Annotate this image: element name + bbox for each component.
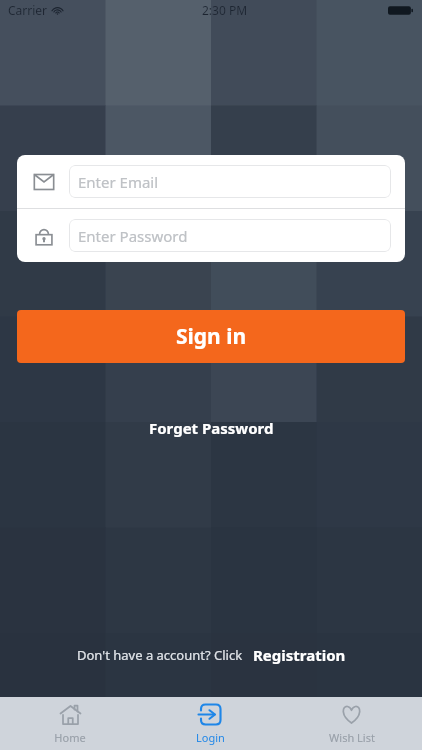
staticText: Home [54, 730, 86, 745]
button[interactable]: Enter Password [69, 219, 391, 252]
button[interactable]: Home [0, 697, 140, 750]
other: Wish List [339, 702, 364, 727]
staticText: Enter Password [78, 226, 188, 246]
staticText: 2:30 PM [202, 2, 248, 18]
button[interactable]: Wish List [281, 697, 422, 750]
button[interactable]: Forget Password [139, 414, 284, 442]
button[interactable]: Registration [253, 645, 346, 665]
staticText: Wish List [329, 730, 375, 745]
staticText: Login [196, 730, 225, 745]
other: Login [198, 702, 223, 727]
button[interactable]: Sign in [17, 310, 405, 363]
staticText: Registration [253, 645, 346, 665]
button[interactable]: Login [140, 697, 281, 750]
button[interactable]: Enter Email [69, 165, 391, 198]
staticText: Sign in [176, 322, 247, 351]
staticText: Carrier [8, 2, 48, 18]
staticText: Forget Password [149, 418, 274, 438]
staticText: Don't have a account? Click [77, 646, 243, 664]
other: Password [33, 225, 55, 247]
other: Email [33, 171, 55, 193]
staticText: Enter Email [78, 172, 159, 192]
other: Home [58, 702, 83, 727]
